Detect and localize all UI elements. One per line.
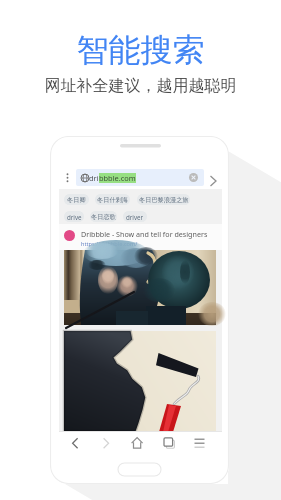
button[interactable]: dri	[76, 169, 204, 186]
button[interactable]: Clear	[189, 173, 198, 182]
button[interactable]	[64, 250, 216, 325]
button[interactable]: 冬日什剎海	[95, 194, 130, 205]
button[interactable]: 冬日卿	[64, 194, 89, 205]
staticText: drive	[67, 213, 82, 221]
button[interactable]: drive	[64, 211, 84, 222]
staticText: https://dribbble.com/	[81, 240, 138, 248]
button[interactable]: Forward	[100, 433, 114, 453]
staticText: bbble.com	[99, 173, 136, 183]
staticText: 冬日巴黎浪漫之旅	[139, 196, 189, 204]
button[interactable]	[64, 331, 216, 431]
button[interactable]: More options	[62, 169, 73, 186]
button[interactable]: 冬日巴黎浪漫之旅	[137, 194, 190, 205]
button[interactable]: Dribbble - Show and tell for designers	[59, 224, 222, 250]
button[interactable]: Back	[69, 433, 83, 453]
staticText: dri	[89, 173, 99, 183]
button[interactable]: driver	[123, 211, 147, 222]
button[interactable]: Go	[205, 169, 222, 186]
button[interactable]: Menu	[194, 433, 208, 453]
staticText: 冬日什剎海	[97, 196, 128, 204]
staticText: Dribbble - Show and tell for designers	[81, 229, 208, 239]
button[interactable]: Home	[131, 433, 145, 453]
staticText: driver	[126, 213, 144, 221]
staticText: 网址补全建议，越用越聪明	[0, 76, 281, 96]
staticText: 冬日卿	[67, 196, 86, 204]
button[interactable]: 冬日恋歌	[90, 211, 117, 222]
button[interactable]: Tabs	[163, 433, 177, 453]
staticText: 冬日恋歌	[91, 213, 116, 221]
staticText: 智能搜索	[0, 30, 281, 70]
